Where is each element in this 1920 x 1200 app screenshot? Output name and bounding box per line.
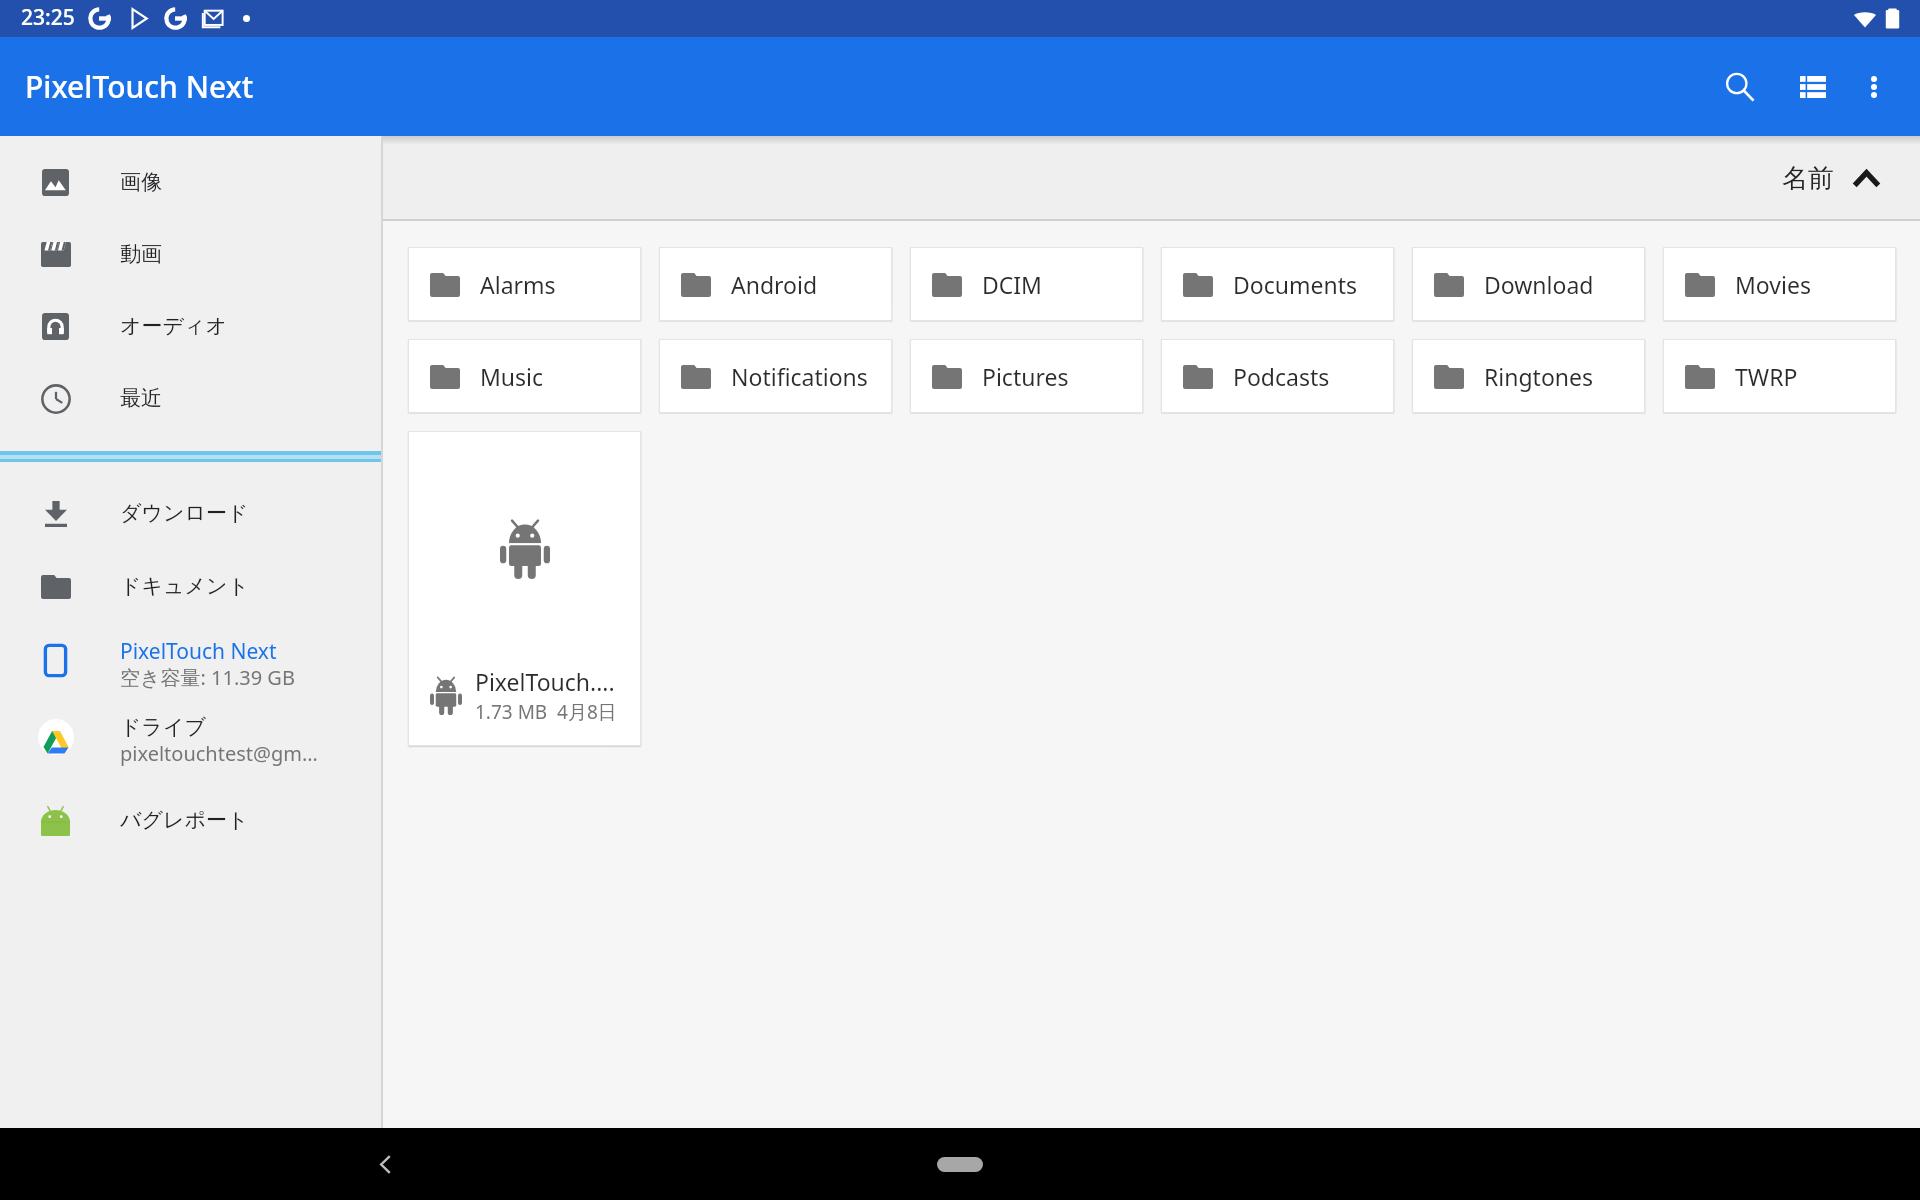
- staticText: PixelTouch Next: [25, 66, 254, 107]
- staticText: pixeltouchtest@gm…: [120, 740, 318, 767]
- staticText: 名前: [1782, 162, 1834, 195]
- staticText: Android: [731, 269, 818, 300]
- staticText: 23:25: [21, 3, 75, 32]
- button[interactable]: オーディオ: [0, 290, 383, 362]
- staticText: Ringtones: [1484, 361, 1594, 392]
- staticText: PixelTouch Next: [120, 637, 277, 666]
- staticText: Movies: [1735, 269, 1811, 300]
- button[interactable]: Home: [937, 1157, 983, 1172]
- button[interactable]: Music: [408, 339, 641, 413]
- button[interactable]: PixelTouch....: [408, 431, 641, 746]
- staticText: DCIM: [982, 269, 1042, 300]
- staticText: Documents: [1233, 269, 1357, 300]
- staticText: Music: [480, 361, 544, 392]
- staticText: ドライブ: [120, 714, 206, 740]
- button[interactable]: ドライブ: [0, 698, 383, 774]
- button[interactable]: PixelTouch Next: [0, 622, 383, 698]
- button[interactable]: Android: [659, 247, 892, 321]
- staticText: Alarms: [480, 269, 556, 300]
- staticText: バグレポート: [120, 807, 249, 833]
- staticText: TWRP: [1735, 361, 1798, 392]
- staticText: Notifications: [731, 361, 868, 392]
- button[interactable]: Back: [356, 1135, 414, 1193]
- staticText: 空き容量: 11.39 GB: [120, 664, 295, 691]
- staticText: オーディオ: [120, 313, 227, 339]
- button[interactable]: 名前: [1758, 136, 1920, 221]
- button[interactable]: Pictures: [910, 339, 1143, 413]
- button[interactable]: バグレポート: [0, 784, 383, 856]
- button[interactable]: 最近: [0, 362, 383, 434]
- staticText: ドキュメント: [120, 573, 249, 599]
- staticText: 最近: [120, 385, 162, 411]
- button[interactable]: Ringtones: [1412, 339, 1645, 413]
- button[interactable]: DCIM: [910, 247, 1143, 321]
- button[interactable]: ドキュメント: [0, 550, 383, 622]
- staticText: 画像: [120, 169, 162, 195]
- staticText: Podcasts: [1233, 361, 1330, 392]
- staticText: 動画: [120, 241, 162, 267]
- button[interactable]: Notifications: [659, 339, 892, 413]
- button[interactable]: Alarms: [408, 247, 641, 321]
- button[interactable]: Download: [1412, 247, 1645, 321]
- button[interactable]: Documents: [1161, 247, 1394, 321]
- staticText: 1.73 MB 4月8日: [475, 699, 617, 725]
- staticText: PixelTouch....: [475, 666, 615, 697]
- button[interactable]: 動画: [0, 218, 383, 290]
- button[interactable]: TWRP: [1663, 339, 1896, 413]
- staticText: Pictures: [982, 361, 1069, 392]
- button[interactable]: Switch view: [1777, 51, 1849, 123]
- button[interactable]: Search: [1704, 51, 1776, 123]
- button[interactable]: Podcasts: [1161, 339, 1394, 413]
- button[interactable]: 画像: [0, 146, 383, 218]
- button[interactable]: Movies: [1663, 247, 1896, 321]
- button[interactable]: ダウンロード: [0, 477, 383, 549]
- staticText: Download: [1484, 269, 1594, 300]
- staticText: ダウンロード: [120, 500, 249, 526]
- button[interactable]: More options: [1838, 51, 1910, 123]
